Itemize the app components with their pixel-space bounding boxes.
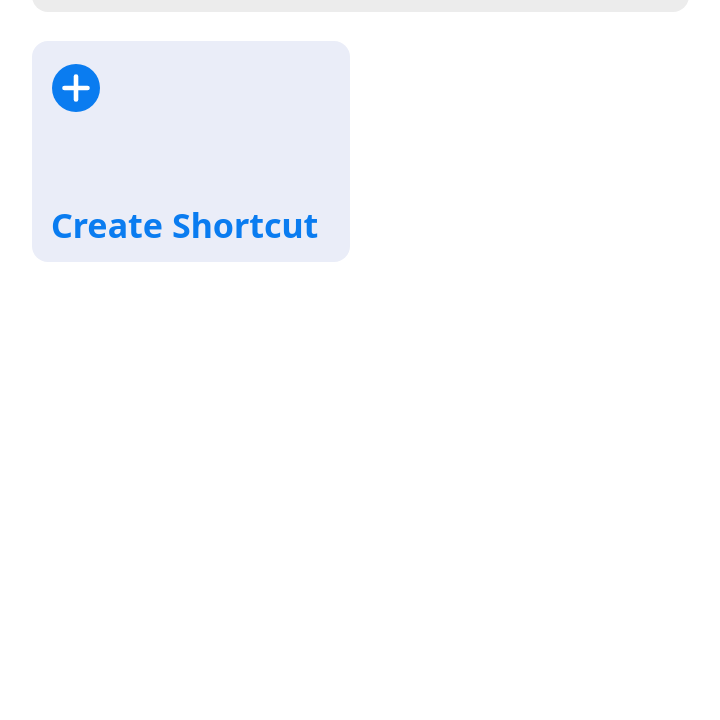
other: Add: [52, 64, 100, 112]
button[interactable]: Add: [32, 41, 350, 262]
staticText: Create Shortcut: [51, 202, 319, 248]
